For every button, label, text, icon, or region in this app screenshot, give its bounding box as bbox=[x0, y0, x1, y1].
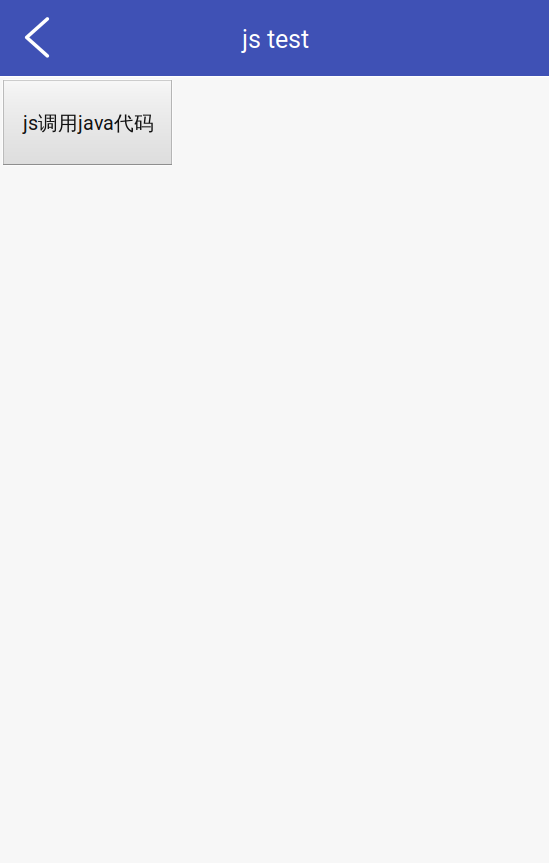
button[interactable]: Back bbox=[11, 0, 63, 75]
button[interactable]: js调用java代码 bbox=[2, 79, 173, 166]
staticText: js调用java代码 bbox=[23, 111, 154, 136]
staticText: js test bbox=[242, 25, 309, 54]
